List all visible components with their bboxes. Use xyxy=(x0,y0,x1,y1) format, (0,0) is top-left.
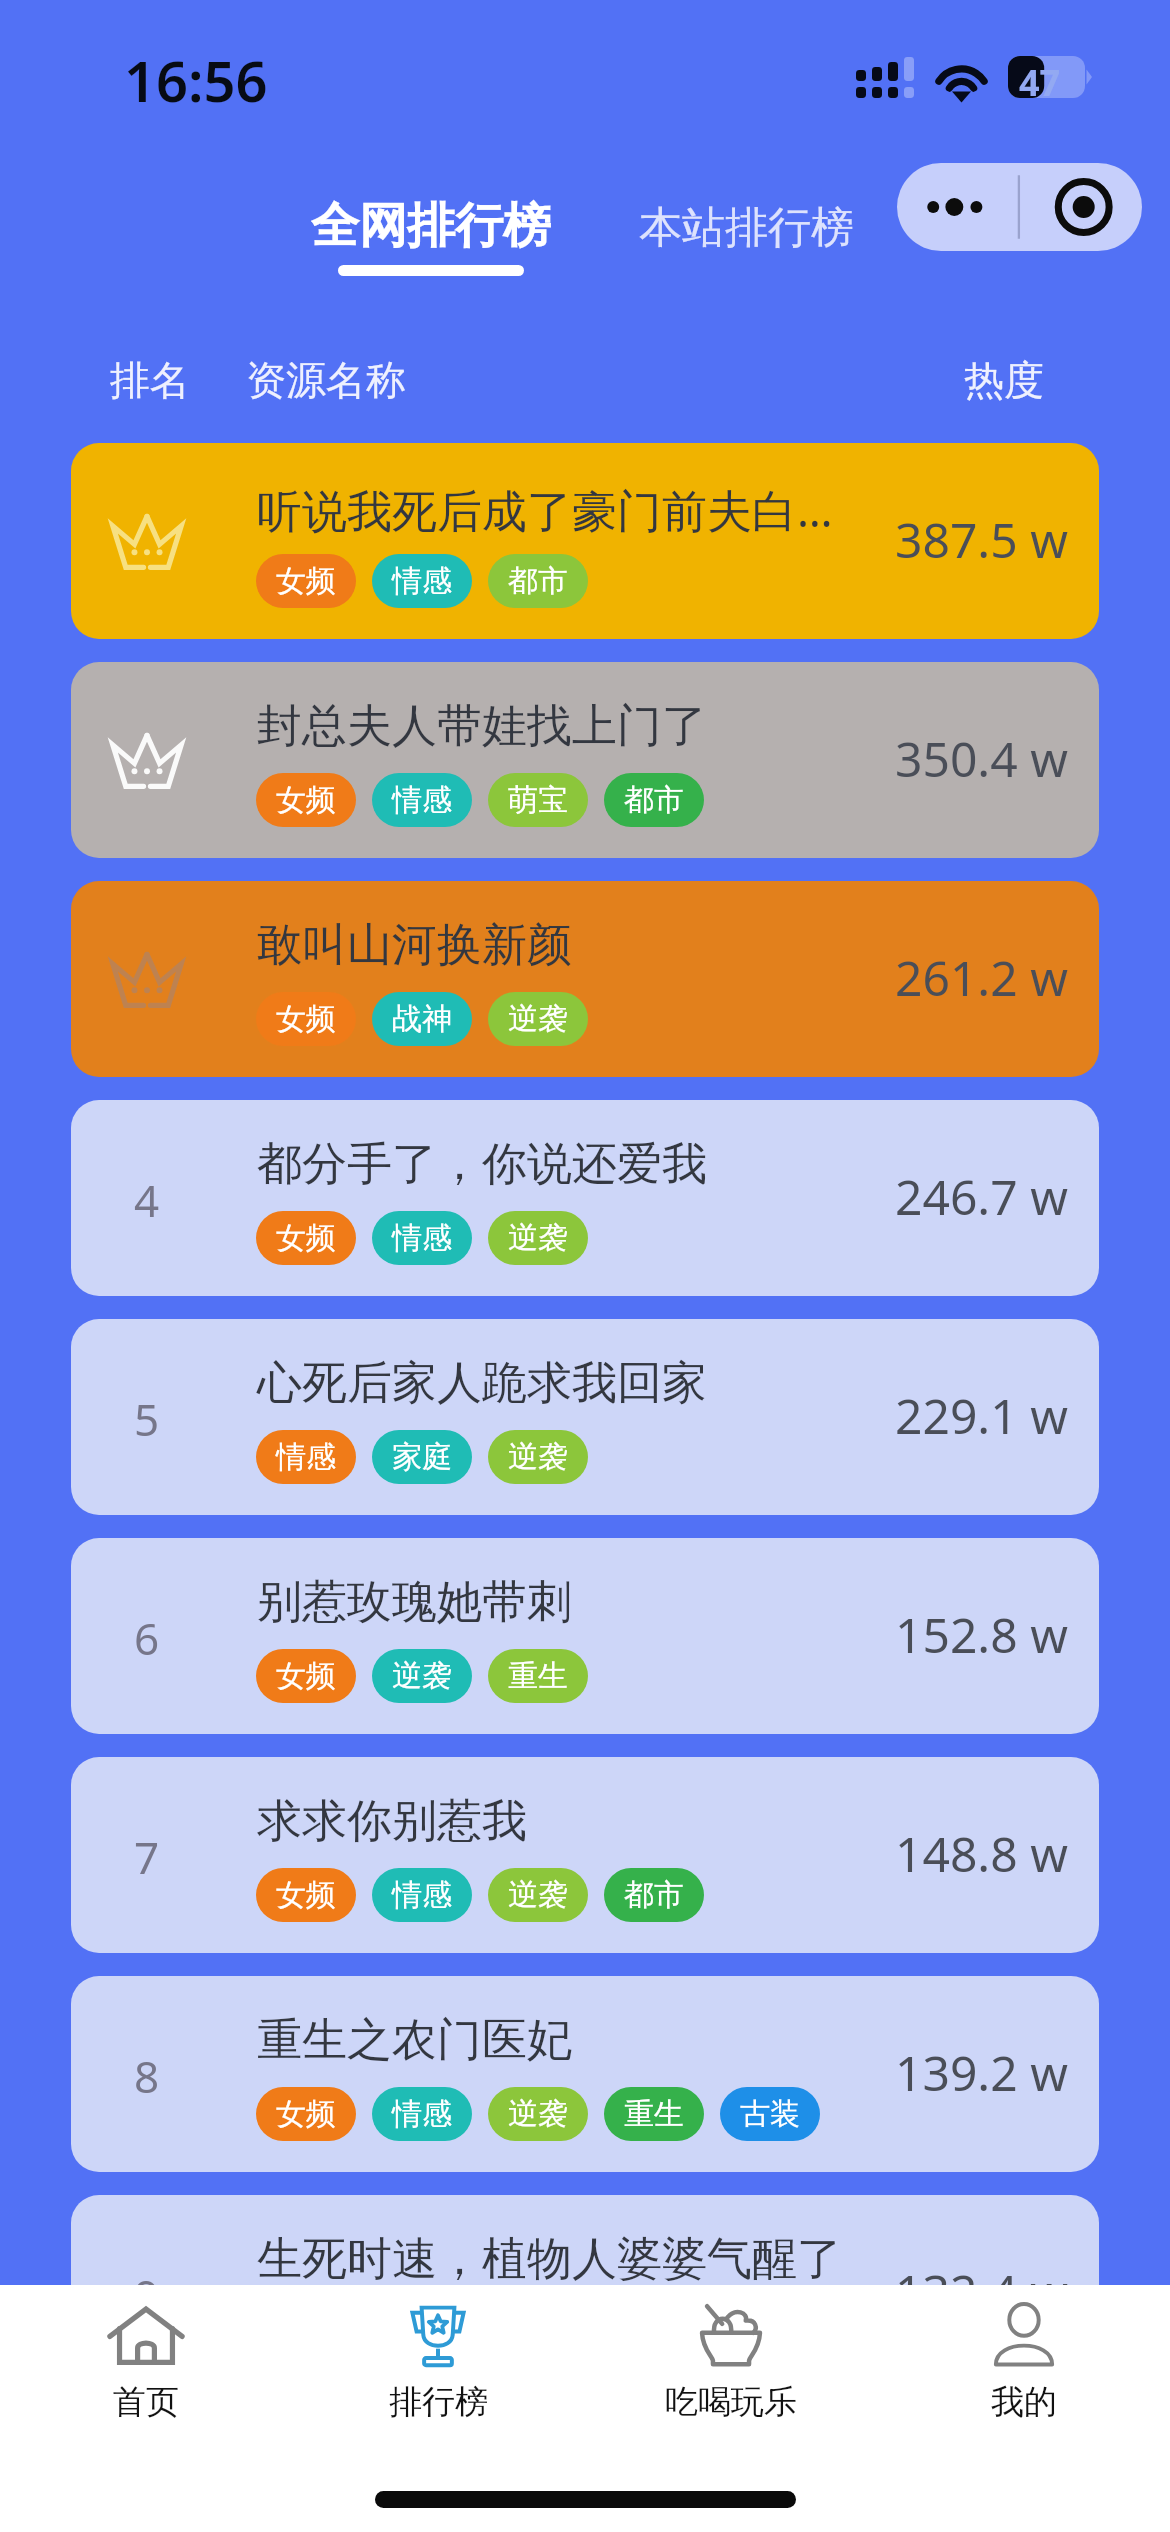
staticText: 全网排行榜 xyxy=(311,196,551,256)
button[interactable]: 封总夫人带娃找上门了 xyxy=(71,662,1099,858)
button[interactable]: 4 xyxy=(71,1100,1099,1296)
staticText: 都市 xyxy=(624,781,684,819)
staticText: 女频 xyxy=(276,2095,336,2133)
staticText: 逆袭 xyxy=(508,1000,568,1038)
staticText: 我的 xyxy=(991,2381,1057,2423)
staticText: 387.5 w xyxy=(895,507,1068,572)
staticText: 女频 xyxy=(276,781,336,819)
button[interactable]: 我的 xyxy=(877,2285,1170,2423)
staticText: 萌宝 xyxy=(508,781,568,819)
button[interactable]: 排行榜 xyxy=(292,2285,584,2423)
staticText: 家庭 xyxy=(392,1438,452,1476)
staticText: 情感 xyxy=(276,1438,336,1476)
staticText: 本站排行榜 xyxy=(639,201,854,255)
staticText: 都分手了，你说还爱我 xyxy=(257,1136,897,1193)
staticText: 情感 xyxy=(392,1876,452,1914)
staticText: 132.4 w xyxy=(895,2259,1068,2324)
button[interactable]: 6 xyxy=(71,1538,1099,1734)
staticText: 重生 xyxy=(624,2095,684,2133)
staticText: 情感 xyxy=(392,2095,452,2133)
staticText: 女频 xyxy=(276,562,336,600)
staticText: 47 xyxy=(1019,58,1061,107)
staticText: 139.2 w xyxy=(895,2040,1068,2105)
staticText: 261.2 w xyxy=(895,945,1068,1010)
button[interactable]: 本站排行榜 xyxy=(629,197,864,259)
staticText: 情感 xyxy=(392,562,452,600)
staticText: 情感 xyxy=(392,781,452,819)
staticText: 246.7 w xyxy=(895,1164,1068,1229)
staticText: 排名 xyxy=(110,355,190,405)
staticText: 情感 xyxy=(392,1219,452,1257)
staticText: 350.4 w xyxy=(895,726,1068,791)
staticText: 6 xyxy=(134,1608,160,1664)
staticText: 排行榜 xyxy=(389,2381,488,2423)
staticText: 都市 xyxy=(508,562,568,600)
staticText: 女频 xyxy=(276,1657,336,1695)
staticText: 148.8 w xyxy=(895,1821,1068,1886)
staticText: 听说我死后成了豪门前夫白… xyxy=(257,479,897,540)
staticText: 女频 xyxy=(276,1876,336,1914)
button[interactable]: 听说我死后成了豪门前夫白… xyxy=(71,443,1099,639)
staticText: 心死后家人跪求我回家 xyxy=(257,1355,897,1412)
staticText: 逆袭 xyxy=(508,1876,568,1914)
staticText: 152.8 w xyxy=(895,1602,1068,1667)
staticText: 重生 xyxy=(508,1657,568,1695)
staticText: 别惹玫瑰她带刺 xyxy=(257,1574,897,1631)
button[interactable]: 8 xyxy=(71,1976,1099,2172)
staticText: 吃喝玩乐 xyxy=(665,2381,797,2423)
staticText: 9 xyxy=(134,2265,160,2321)
staticText: 生死时速，植物人婆婆气醒了 xyxy=(257,2231,897,2288)
button[interactable]: 7 xyxy=(71,1757,1099,1953)
button[interactable]: 首页 xyxy=(0,2285,292,2423)
staticText: 逆袭 xyxy=(508,1219,568,1257)
staticText: 7 xyxy=(134,1827,160,1883)
staticText: 都市 xyxy=(624,1876,684,1914)
staticText: 229.1 w xyxy=(895,1383,1068,1448)
button[interactable]: 吃喝玩乐 xyxy=(584,2285,877,2423)
button[interactable]: 敢叫山河换新颜 xyxy=(71,881,1099,1077)
staticText: 逆袭 xyxy=(508,2095,568,2133)
staticText: 逆袭 xyxy=(508,1438,568,1476)
staticText: 资源名称 xyxy=(246,355,406,405)
staticText: 4 xyxy=(134,1170,160,1226)
button[interactable]: 5 xyxy=(71,1319,1099,1515)
staticText: 16:56 xyxy=(124,42,268,118)
staticText: 重生之农门医妃 xyxy=(257,2012,897,2069)
staticText: 逆袭 xyxy=(392,1657,452,1695)
staticText: 热度 xyxy=(964,355,1044,405)
staticText: 战神 xyxy=(392,1000,452,1038)
button[interactable]: Close mini program xyxy=(1019,163,1142,251)
staticText: 敢叫山河换新颜 xyxy=(257,917,897,974)
staticText: 求求你别惹我 xyxy=(257,1793,897,1850)
staticText: 首页 xyxy=(113,2381,179,2423)
staticText: 5 xyxy=(134,1389,160,1445)
staticText: 女频 xyxy=(276,1219,336,1257)
staticText: 封总夫人带娃找上门了 xyxy=(257,698,897,755)
staticText: 8 xyxy=(134,2046,160,2102)
button[interactable]: 全网排行榜 xyxy=(301,192,561,280)
button[interactable]: 9 xyxy=(71,2195,1099,2391)
staticText: 情感 xyxy=(392,2314,452,2352)
button[interactable]: More options xyxy=(897,163,1019,251)
staticText: 古装 xyxy=(740,2095,800,2133)
staticText: 女频 xyxy=(276,1000,336,1038)
